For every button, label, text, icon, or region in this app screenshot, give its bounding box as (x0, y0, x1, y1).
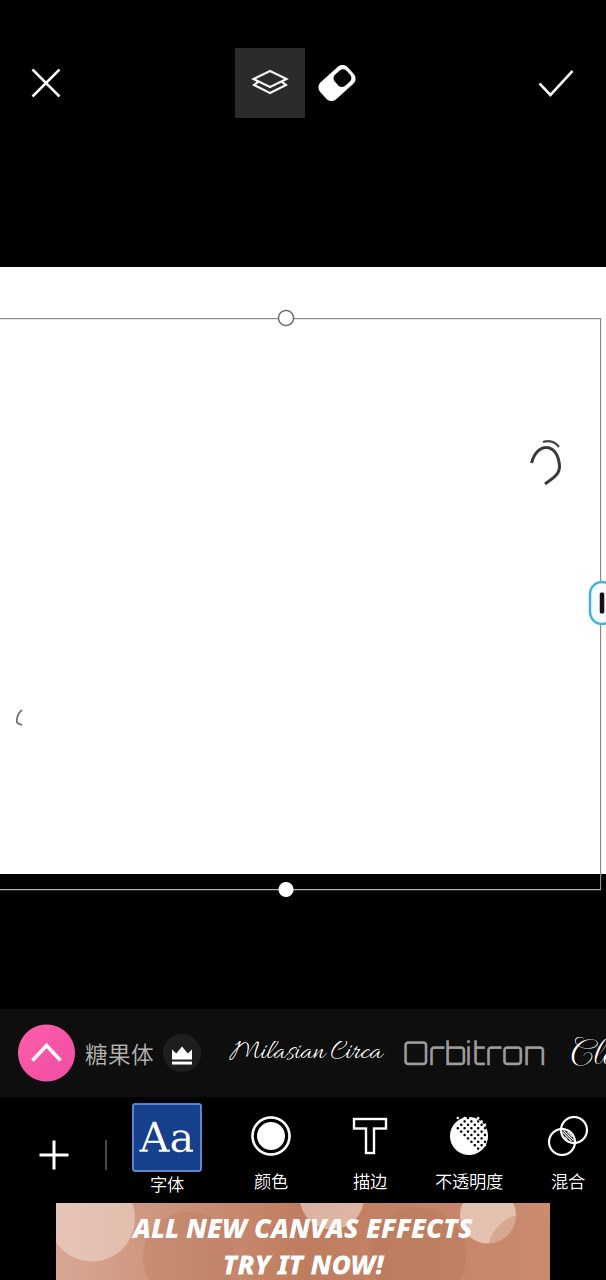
staticText: 糖果体 (85, 1037, 154, 1069)
staticText: Orbitron (402, 1033, 545, 1073)
button[interactable]: 糖果体 (88, 1009, 198, 1097)
button[interactable]: Orbitron (401, 1009, 547, 1097)
button[interactable]: 混合 (518, 1104, 606, 1193)
staticText: Milasian Circa (229, 1035, 382, 1070)
button[interactable]: ALL NEW CANVAS EFFECTS (56, 1203, 550, 1280)
button[interactable]: Layers (235, 48, 305, 118)
staticText: 颜色 (254, 1168, 288, 1193)
button[interactable]: Milasian Circa (227, 1009, 385, 1097)
button[interactable]: Add (19, 1120, 89, 1190)
staticText: 字体 (150, 1171, 184, 1196)
button[interactable]: Eraser (306, 52, 368, 114)
button[interactable]: Cla (570, 1009, 606, 1097)
staticText: 描边 (353, 1168, 387, 1193)
staticText: 不透明度 (435, 1168, 503, 1193)
staticText: TRY IT NOW! (222, 1246, 383, 1280)
button[interactable]: Close (16, 53, 76, 113)
button[interactable]: Expand font list (18, 1024, 75, 1081)
staticText: Cla (570, 1029, 606, 1077)
button[interactable]: 不透明度 (414, 1104, 524, 1193)
staticText: ALL NEW CANVAS EFFECTS (133, 1210, 473, 1245)
button[interactable]: Done (526, 53, 586, 113)
button[interactable]: 描边 (320, 1104, 420, 1193)
button[interactable]: Aa (117, 1104, 217, 1196)
staticText: 混合 (551, 1168, 585, 1193)
staticText: Aa (139, 1113, 194, 1161)
button[interactable]: 颜色 (221, 1104, 321, 1193)
